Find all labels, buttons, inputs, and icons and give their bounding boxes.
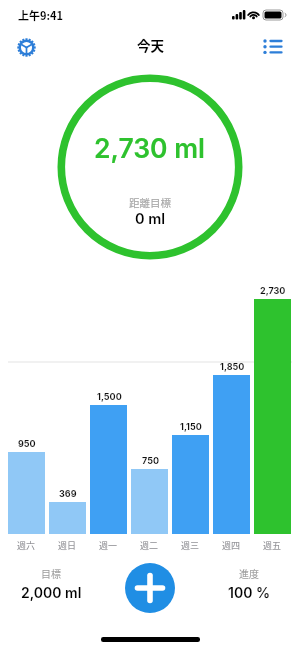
button[interactable] <box>125 563 175 613</box>
staticText: 上午9:41 <box>18 7 64 23</box>
staticText: 0 ml <box>135 210 166 228</box>
staticText: 週五 <box>263 539 282 552</box>
staticText: 進度 <box>239 566 259 580</box>
staticText: 週三 <box>181 539 200 552</box>
staticText: 1,850 <box>220 361 245 372</box>
staticText: 週六 <box>17 539 36 552</box>
staticText: 週日 <box>58 539 77 552</box>
staticText: 2,000 ml <box>21 584 82 601</box>
staticText: 1,150 <box>180 421 202 432</box>
staticText: 100 % <box>228 584 270 601</box>
staticText: 369 <box>59 488 77 499</box>
staticText: 2,730 ml <box>94 132 206 164</box>
staticText: 週一 <box>99 539 118 552</box>
staticText: 距離目標 <box>129 195 171 210</box>
staticText: 目標 <box>41 566 61 580</box>
staticText: 950 <box>18 438 36 449</box>
staticText: 週二 <box>140 539 159 552</box>
button[interactable] <box>14 35 39 60</box>
staticText: 今天 <box>137 35 164 55</box>
staticText: 週四 <box>222 539 241 552</box>
button[interactable] <box>261 36 285 60</box>
staticText: 1,500 <box>97 391 122 402</box>
staticText: 750 <box>142 455 159 466</box>
staticText: 2,730 <box>260 285 286 296</box>
